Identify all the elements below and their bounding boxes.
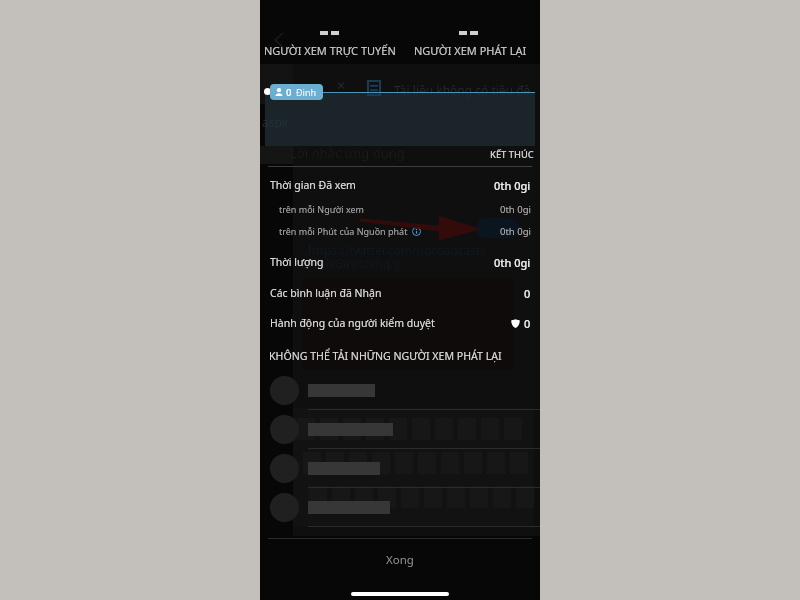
staticText: NGƯỜI XEM TRỰC TUYẾN	[264, 43, 396, 58]
button[interactable]: trên mỗi Phút của Nguồn phát	[260, 220, 540, 242]
staticText: Thời gian Đã xem	[270, 178, 356, 192]
button[interactable]: trên mỗi Người xem	[260, 198, 540, 220]
staticText: aspx	[262, 114, 288, 130]
staticText: trên mỗi Người xem	[279, 203, 365, 215]
other: Back	[272, 33, 286, 47]
button[interactable]: Xong	[260, 537, 540, 583]
staticText: KHÔNG THỂ TẢI NHỮNG NGƯỜI XEM PHÁT LẠI	[269, 349, 502, 363]
staticText: Xong	[386, 552, 414, 568]
other: Information	[412, 227, 421, 236]
staticText: Các bình luận đã Nhận	[270, 286, 382, 300]
staticText: KẾT THÚC	[490, 148, 534, 161]
staticText: 0th 0gi	[494, 178, 531, 193]
staticText: ✕	[336, 79, 347, 93]
button[interactable]	[260, 371, 540, 410]
staticText: Hành động của người kiểm duyệt	[270, 316, 435, 330]
button[interactable]: 0	[270, 84, 323, 100]
staticText: /1yNGavnzvnq.lj	[308, 255, 400, 271]
button[interactable]: Thời gian Đã xem	[260, 171, 540, 199]
staticText: Thời lượng	[270, 255, 324, 269]
staticText: NGƯỜI XEM PHÁT LẠI	[414, 43, 527, 58]
button[interactable]	[260, 449, 540, 488]
staticText: trên mỗi Phút của Nguồn phát	[279, 225, 408, 237]
button[interactable]: KẾT THÚC	[490, 148, 534, 161]
button[interactable]: KHÔNG THỂ TẢI NHỮNG NGƯỜI XEM PHÁT LẠI	[269, 349, 502, 363]
button[interactable]: Hành động của người kiểm duyệt	[260, 309, 540, 337]
staticText: Lời nhắc ứng dụng	[290, 144, 405, 162]
staticText: 0th 0gi	[500, 225, 531, 238]
button[interactable]: Các bình luận đã Nhận	[260, 279, 540, 307]
button[interactable]	[260, 488, 540, 527]
button[interactable]: NGƯỜI XEM PHÁT LẠI	[400, 43, 540, 58]
staticText: 0	[524, 316, 531, 331]
button[interactable]: NGƯỜI XEM TRỰC TUYẾN	[260, 43, 400, 58]
staticText: 0	[286, 86, 292, 99]
staticText: 0th 0gi	[500, 203, 531, 216]
staticText: 0	[524, 286, 531, 301]
button[interactable]: Thời lượng	[260, 248, 540, 276]
staticText: Tài liệu không có tiêu đề	[394, 82, 531, 98]
staticText: 0th 0gi	[494, 255, 531, 270]
staticText: Đinh	[296, 86, 317, 98]
button[interactable]	[260, 410, 540, 449]
staticText: https://twitter.com/i/broadcasts	[308, 242, 486, 258]
